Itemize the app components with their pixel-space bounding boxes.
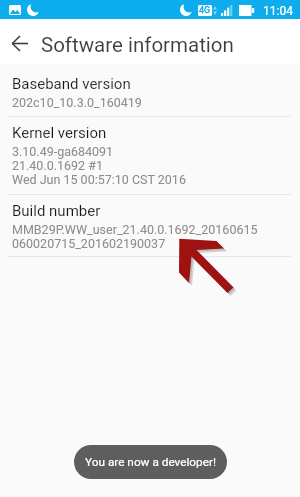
staticText: Software information	[41, 33, 234, 57]
button[interactable]: Back	[0, 19, 40, 64]
staticText: MMB29P.WW_user_21.40.0.1692_20160615 060…	[12, 222, 258, 251]
staticText: 4G	[199, 5, 211, 16]
button[interactable]: Build number	[0, 194, 300, 256]
staticText: 3.10.49-ga684091 21.40.0.1692 #1 Wed Jun…	[12, 144, 186, 187]
button[interactable]: Baseband version	[0, 67, 300, 116]
staticText: Kernel version	[12, 124, 107, 142]
staticText: Build number	[12, 202, 101, 220]
staticText: 202c10_10.3.0_160419	[12, 95, 142, 110]
button[interactable]: Kernel version	[0, 116, 300, 194]
button[interactable]: You are now a developer!	[74, 445, 227, 479]
staticText: 11:04	[263, 4, 293, 18]
staticText: Baseband version	[12, 75, 131, 93]
staticText: You are now a developer!	[85, 455, 216, 469]
